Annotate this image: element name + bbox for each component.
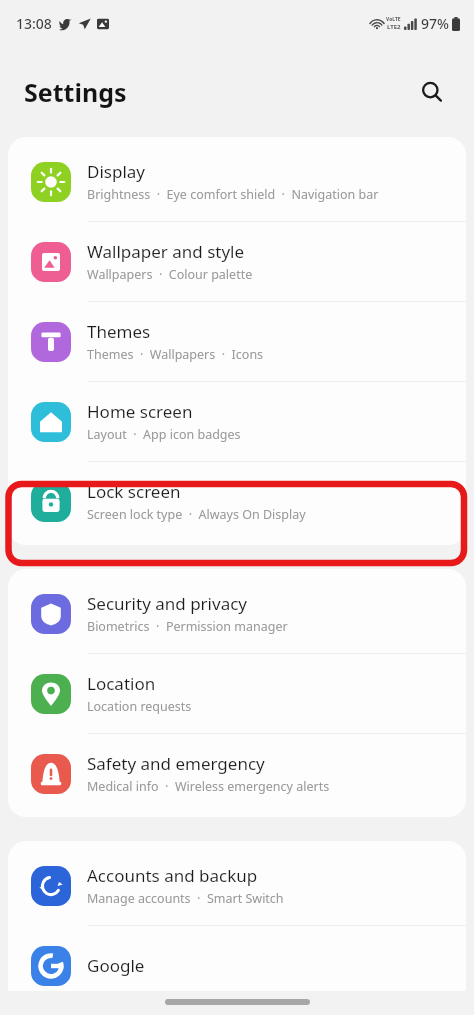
staticText: Home screen: [87, 400, 193, 423]
button[interactable]: Home screen: [8, 382, 466, 461]
button[interactable]: Accounts and backup: [8, 846, 466, 925]
button[interactable]: Display: [8, 142, 466, 221]
staticText: LTE2: [387, 23, 401, 31]
staticText: Wallpapers · Colour palette: [87, 266, 253, 283]
staticText: Manage accounts · Smart Switch: [87, 890, 284, 907]
staticText: Location: [87, 672, 156, 695]
staticText: Themes · Wallpapers · Icons: [87, 346, 264, 363]
button[interactable]: Location: [8, 654, 466, 733]
staticText: Brightness · Eye comfort shield · Naviga…: [87, 186, 379, 203]
staticText: Wallpaper and style: [87, 240, 245, 263]
button[interactable]: Themes: [8, 302, 466, 381]
staticText: Security and privacy: [87, 592, 248, 615]
staticText: Google: [87, 954, 145, 977]
staticText: Layout · App icon badges: [87, 426, 241, 443]
staticText: Display: [87, 160, 145, 183]
staticText: Accounts and backup: [87, 864, 258, 887]
staticText: Screen lock type · Always On Display: [87, 506, 306, 523]
button[interactable]: Search: [410, 70, 454, 114]
button[interactable]: Security and privacy: [8, 574, 466, 653]
staticText: 97%: [421, 14, 449, 33]
staticText: Safety and emergency: [87, 752, 265, 775]
button[interactable]: Google: [8, 926, 466, 1005]
staticText: Medical info · Wireless emergency alerts: [87, 778, 330, 795]
staticText: Biometrics · Permission manager: [87, 618, 288, 635]
staticText: Settings: [24, 75, 127, 109]
button[interactable]: Wallpaper and style: [8, 222, 466, 301]
staticText: Lock screen: [87, 480, 181, 503]
staticText: Location requests: [87, 698, 192, 715]
button[interactable]: Safety and emergency: [8, 734, 466, 813]
staticText: VoLTE: [386, 16, 401, 23]
staticText: 13:08: [16, 14, 52, 33]
button[interactable]: Lock screen: [8, 462, 466, 541]
staticText: Themes: [87, 320, 151, 343]
